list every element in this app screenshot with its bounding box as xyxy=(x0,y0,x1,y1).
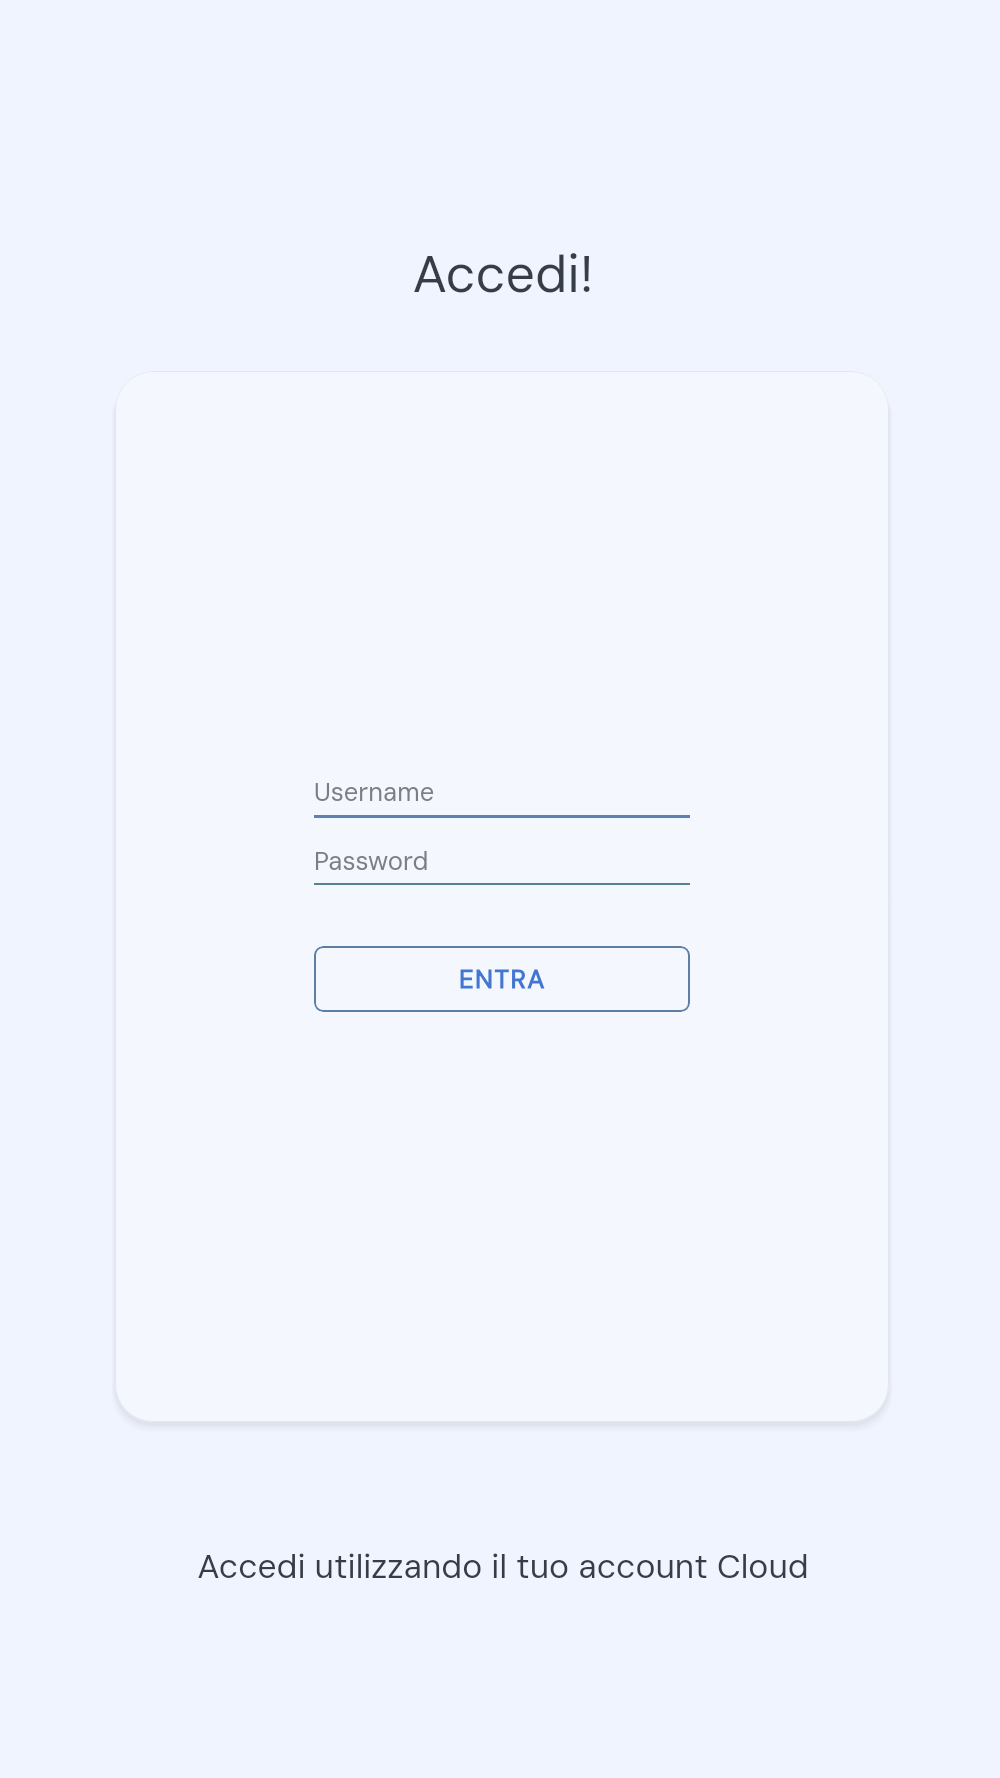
staticText: ENTRA xyxy=(459,962,546,996)
staticText: Username xyxy=(314,776,435,809)
button[interactable]: ENTRA xyxy=(314,946,690,1012)
staticText: Password xyxy=(314,845,429,878)
staticText: Accedi! xyxy=(3,240,1000,308)
staticText: Accedi utilizzando il tuo account Cloud xyxy=(3,1545,1000,1589)
button[interactable]: Password xyxy=(314,845,690,885)
button[interactable]: Username xyxy=(314,776,690,818)
